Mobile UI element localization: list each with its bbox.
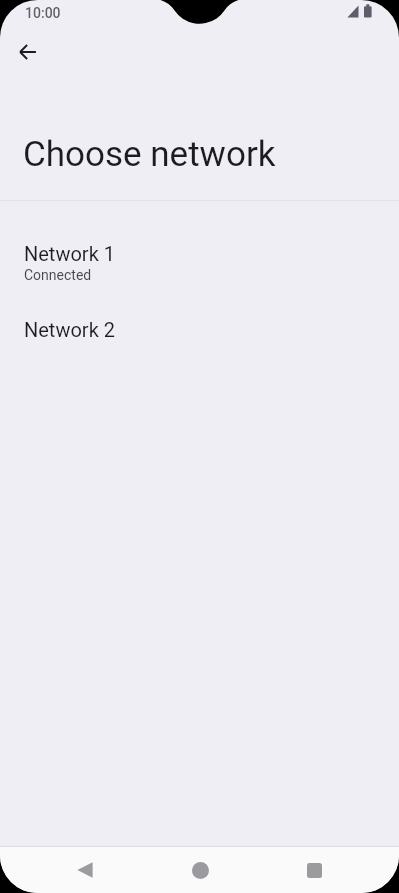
button[interactable]: Home bbox=[176, 847, 224, 893]
button[interactable]: Network 1 bbox=[0, 225, 399, 301]
staticText: 10:00 bbox=[25, 5, 61, 21]
staticText: Choose network bbox=[23, 134, 276, 175]
button[interactable]: Recent apps bbox=[290, 847, 338, 893]
staticText: Connected bbox=[24, 267, 92, 283]
staticText: Network 1 bbox=[24, 242, 115, 265]
button[interactable]: Navigate up bbox=[7, 31, 48, 72]
button[interactable]: Network 2 bbox=[0, 301, 399, 377]
staticText: Network 2 bbox=[24, 318, 115, 341]
button[interactable]: Back bbox=[61, 847, 109, 893]
